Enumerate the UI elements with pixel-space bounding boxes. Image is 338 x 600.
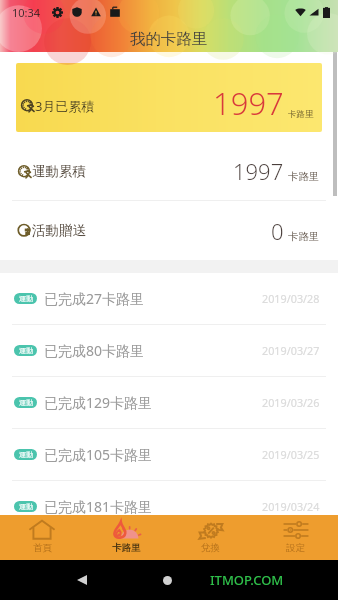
button[interactable]: 運動累積	[0, 132, 338, 200]
staticText: 已完成80卡路里	[44, 341, 145, 360]
staticText: 卡路里	[112, 542, 141, 554]
staticText: 2019/03/25	[262, 447, 320, 462]
staticText: 2019/03/28	[262, 291, 320, 306]
button[interactable]: 兌換	[168, 515, 253, 560]
other: Back	[77, 575, 87, 585]
button[interactable]: 運動	[0, 273, 338, 324]
staticText: 已完成105卡路里	[44, 445, 153, 464]
staticText: 2019/03/24	[262, 499, 320, 514]
staticText: 運動	[19, 502, 33, 511]
staticText: 首頁	[33, 542, 52, 554]
button[interactable]: 運動	[0, 377, 338, 428]
staticText: 運動	[19, 346, 33, 355]
button[interactable]: 卡路里	[84, 515, 168, 560]
staticText: 卡路里	[288, 109, 314, 120]
button[interactable]: 運動	[0, 429, 338, 480]
staticText: 兌換	[201, 542, 220, 554]
staticText: 設定	[286, 542, 305, 554]
staticText: 已完成181卡路里	[44, 497, 153, 516]
staticText: 我的卡路里	[130, 29, 208, 49]
staticText: 2019/03/27	[262, 343, 320, 358]
staticText: 卡路里	[288, 230, 320, 243]
button[interactable]: 運動	[0, 325, 338, 376]
button[interactable]: 首頁	[0, 515, 84, 560]
button[interactable]: 3月已累積	[16, 63, 322, 132]
staticText: 卡路里	[288, 170, 320, 183]
button[interactable]: 運動	[0, 481, 338, 532]
staticText: 3月已累積	[35, 97, 95, 115]
staticText: ITMOP.COM	[210, 571, 284, 589]
staticText: 運動	[19, 398, 33, 407]
staticText: 活動贈送	[32, 222, 86, 239]
other: Home	[163, 576, 172, 585]
button[interactable]: 設定	[253, 515, 338, 560]
staticText: 1997	[233, 156, 284, 186]
staticText: 運動累積	[32, 163, 86, 180]
staticText: 0	[271, 216, 284, 246]
staticText: 已完成129卡路里	[44, 393, 153, 412]
staticText: 已完成27卡路里	[44, 289, 145, 308]
staticText: 運動	[19, 450, 33, 459]
staticText: 2019/03/26	[262, 395, 320, 410]
staticText: 10:34	[12, 5, 41, 20]
staticText: 1997	[213, 82, 284, 124]
staticText: 運動	[19, 294, 33, 303]
button[interactable]: 活動贈送	[0, 201, 338, 260]
